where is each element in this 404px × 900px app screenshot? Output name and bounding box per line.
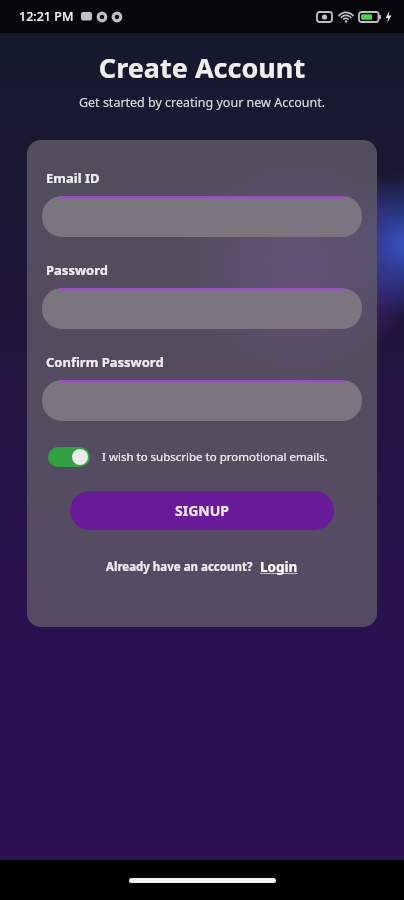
button[interactable]	[42, 196, 362, 237]
staticText: Create Account	[0, 49, 404, 86]
staticText: Get started by creating your new Account…	[0, 94, 404, 111]
staticText: Email ID	[46, 169, 100, 187]
staticText: 12:21 PM	[19, 8, 74, 25]
button[interactable]	[42, 288, 362, 329]
other: Home	[129, 878, 276, 883]
button[interactable]: SIGNUP	[70, 491, 334, 530]
staticText: Login	[260, 558, 298, 576]
staticText: Already have an account?	[106, 559, 253, 575]
button[interactable]	[42, 380, 362, 421]
staticText: I wish to subscribe to promotional email…	[102, 449, 328, 465]
button[interactable]: I wish to subscribe to promotional email…	[42, 445, 362, 469]
staticText: Password	[46, 261, 108, 279]
button[interactable]: Login	[260, 558, 298, 576]
staticText: Confirm Password	[46, 353, 164, 371]
staticText: SIGNUP	[175, 501, 229, 520]
